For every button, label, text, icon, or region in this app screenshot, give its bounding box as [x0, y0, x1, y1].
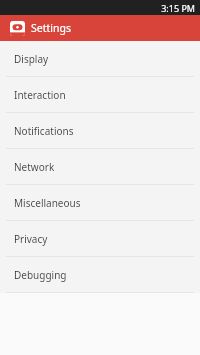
button[interactable]: Network [0, 149, 200, 184]
button[interactable]: App logo [0, 15, 200, 41]
staticText: 3:15 PM [161, 2, 195, 14]
button[interactable]: Interaction [0, 77, 200, 112]
staticText: Privacy [14, 232, 48, 246]
button[interactable]: Privacy [0, 221, 200, 256]
staticText: Settings [31, 21, 71, 35]
staticText: Debugging [14, 268, 67, 282]
button[interactable]: Debugging [0, 257, 200, 292]
other: App logo [9, 20, 25, 36]
button[interactable]: Miscellaneous [0, 185, 200, 220]
staticText: Notifications [14, 124, 74, 138]
staticText: Miscellaneous [14, 196, 81, 210]
staticText: Interaction [14, 88, 66, 102]
staticText: Display [14, 52, 49, 66]
button[interactable]: Display [0, 41, 200, 76]
button[interactable]: Notifications [0, 113, 200, 148]
staticText: Network [14, 160, 55, 174]
